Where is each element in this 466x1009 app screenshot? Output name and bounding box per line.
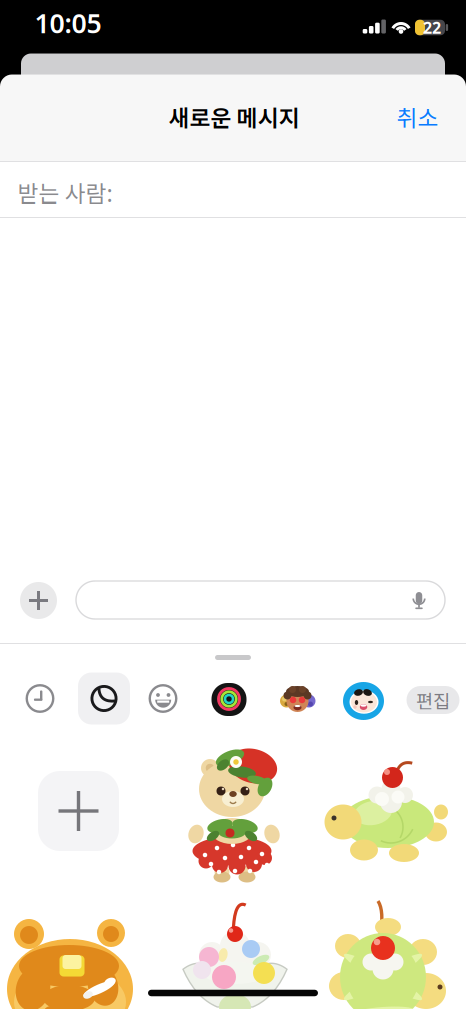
button[interactable]: 편집 — [406, 686, 459, 714]
button[interactable]: Strawberry bear sticker — [189, 745, 281, 885]
button[interactable]: Stickers app — [343, 681, 384, 720]
staticText: 취소 — [396, 100, 438, 133]
button[interactable]: To: — [0, 162, 466, 217]
button[interactable]: Memoji stickers — [276, 680, 318, 720]
button[interactable]: Melon bun sticker — [329, 892, 449, 1000]
button[interactable]: Recently used — [25, 684, 54, 713]
button[interactable]: Message — [76, 581, 445, 619]
button[interactable]: Bear pancake sticker — [7, 894, 135, 1009]
button[interactable]: Apps — [20, 582, 57, 619]
button[interactable]: Fitness — [211, 683, 246, 716]
button[interactable]: Sundae sticker — [182, 905, 288, 1009]
staticText: 받는 사람: — [17, 176, 112, 208]
button[interactable]: Melon turtle sticker — [325, 761, 449, 873]
button[interactable]: Genmoji — [148, 684, 177, 713]
staticText: 22 — [423, 17, 441, 38]
staticText: 편집 — [416, 686, 450, 713]
button[interactable]: New sticker — [38, 771, 119, 851]
button[interactable]: 취소 — [396, 100, 438, 133]
button[interactable]: Stickers — [78, 672, 130, 724]
staticText: 새로운 메시지 — [168, 100, 299, 133]
staticText: 10:05 — [34, 5, 101, 41]
button[interactable]: Dictate — [412, 591, 426, 610]
